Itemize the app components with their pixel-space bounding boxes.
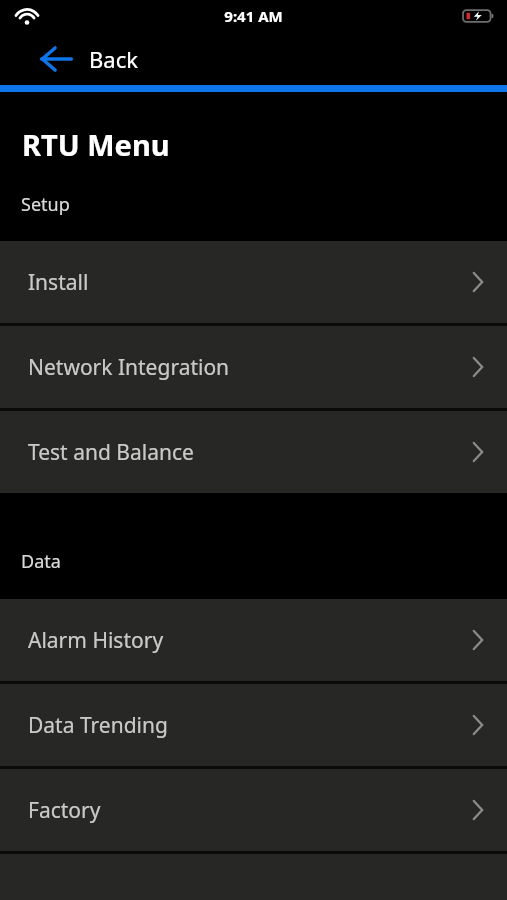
other: Wi-Fi (14, 7, 40, 25)
staticText: 9:41 AM (224, 6, 283, 26)
staticText: Data Trending (28, 711, 471, 740)
other: Battery charging (463, 8, 495, 24)
button[interactable]: Factory (0, 769, 507, 851)
staticText: RTU Menu (22, 125, 170, 164)
staticText: Alarm History (28, 626, 471, 655)
staticText: Install (28, 268, 471, 297)
button[interactable]: Data Trending (0, 684, 507, 766)
staticText: Network Integration (28, 353, 471, 382)
button[interactable]: Network Integration (0, 326, 507, 408)
button[interactable]: Install (0, 241, 507, 323)
button[interactable]: Alarm History (0, 599, 507, 681)
other: Back (40, 46, 72, 72)
button[interactable]: Test and Balance (0, 411, 507, 493)
staticText: Test and Balance (28, 438, 471, 467)
staticText: Back (89, 44, 138, 74)
staticText: Factory (28, 796, 471, 825)
button[interactable]: Back (0, 32, 507, 85)
staticText: Data (21, 549, 61, 574)
staticText: Setup (21, 192, 70, 217)
